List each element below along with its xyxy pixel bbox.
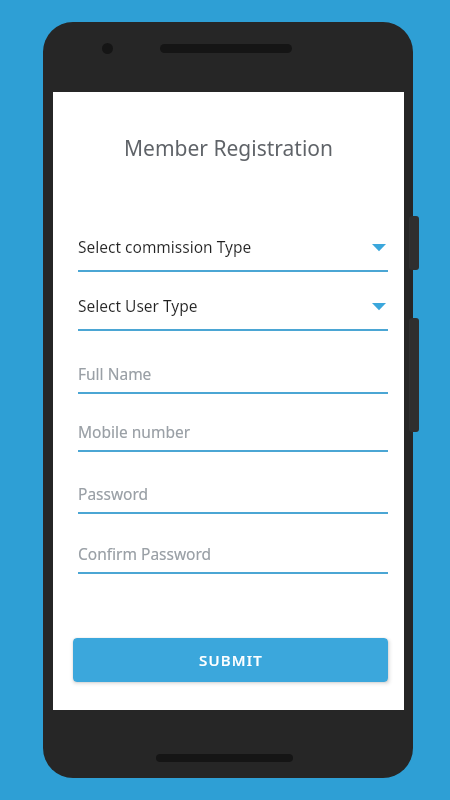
staticText: Select commission Type xyxy=(78,236,372,257)
staticText: Select User Type xyxy=(78,295,372,316)
button[interactable]: Volume xyxy=(409,216,419,270)
button[interactable]: Password xyxy=(78,478,388,514)
staticText: Full Name xyxy=(78,363,152,384)
button[interactable]: Full Name xyxy=(78,358,388,394)
staticText: Password xyxy=(78,483,149,504)
button[interactable]: SUBMIT xyxy=(73,638,388,682)
button[interactable]: Power xyxy=(409,318,419,432)
staticText: Member Registration xyxy=(53,134,404,163)
staticText: Confirm Password xyxy=(78,543,212,564)
button[interactable]: Confirm Password xyxy=(78,538,388,574)
staticText: Mobile number xyxy=(78,421,191,442)
staticText: SUBMIT xyxy=(199,650,263,670)
button[interactable]: Mobile number xyxy=(78,416,388,452)
button[interactable]: Select User Type xyxy=(78,295,388,331)
button[interactable]: Select commission Type xyxy=(78,236,388,272)
